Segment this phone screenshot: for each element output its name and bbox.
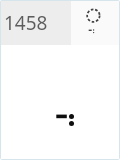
button[interactable]: Refresh	[82, 4, 105, 27]
staticText: 1458	[4, 10, 48, 36]
